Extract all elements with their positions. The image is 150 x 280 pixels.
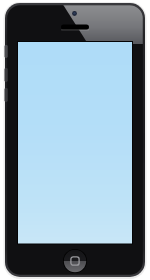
button[interactable]: Home — [64, 250, 86, 272]
button[interactable]: Phone screen — [18, 42, 132, 243]
